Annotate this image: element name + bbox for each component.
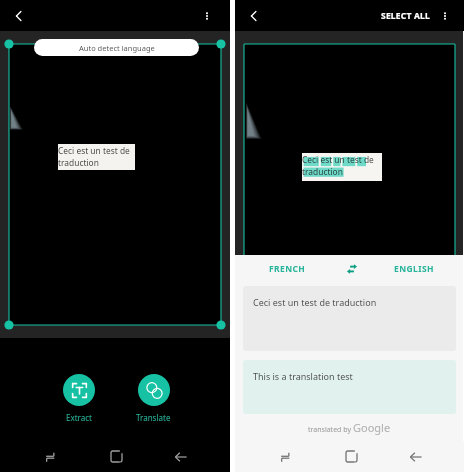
staticText: Auto detect language — [79, 43, 155, 53]
button[interactable]: More options — [196, 5, 218, 27]
button[interactable]: Home — [327, 441, 375, 472]
button[interactable]: FRENCH — [235, 256, 340, 282]
button[interactable]: Recent apps — [261, 441, 309, 472]
button[interactable]: This is a translation test — [243, 360, 456, 414]
button[interactable]: Extract — [48, 374, 109, 423]
button[interactable]: Swap languages — [340, 256, 364, 282]
staticText: Ceci est un test de traduction — [253, 296, 377, 308]
staticText: Extract — [66, 412, 92, 423]
button[interactable]: ENGLISH — [364, 256, 464, 282]
staticText: Translate — [136, 412, 171, 423]
button[interactable]: SELECT ALL — [378, 5, 433, 27]
staticText: Google — [353, 420, 391, 435]
button[interactable]: Auto detect language — [34, 39, 199, 56]
button[interactable]: Home — [92, 441, 140, 472]
button[interactable]: Back — [157, 441, 205, 472]
staticText: Ceci est un test de traduction — [58, 145, 130, 169]
button[interactable]: Translate — [123, 374, 184, 423]
staticText: FRENCH — [269, 263, 306, 275]
staticText: SELECT ALL — [381, 10, 430, 22]
button[interactable]: More options — [435, 6, 455, 26]
button[interactable]: Navigate up — [243, 5, 265, 27]
staticText: ENGLISH — [394, 263, 434, 275]
button[interactable]: Recent apps — [26, 441, 74, 472]
staticText: translated by — [308, 425, 353, 435]
staticText: Ceci est un test de traduction — [302, 154, 374, 178]
button[interactable]: Back — [392, 441, 440, 472]
button[interactable]: Ceci est un test de traduction — [243, 286, 456, 351]
button[interactable]: Navigate up — [8, 5, 30, 27]
staticText: This is a translation test — [253, 370, 353, 382]
